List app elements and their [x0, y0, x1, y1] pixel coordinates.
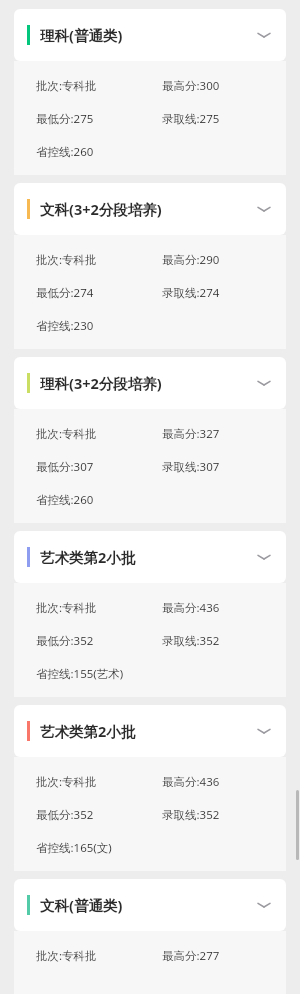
staticText: 最低分:352	[36, 807, 162, 823]
staticText: 省控线:165(文)	[36, 840, 162, 856]
staticText: 省控线:155(艺术)	[36, 666, 162, 682]
staticText: 理科(普通类)	[40, 25, 254, 45]
other: Collapse	[254, 199, 274, 219]
staticText: 批次:专科批	[36, 948, 162, 964]
staticText: 录取线:274	[162, 285, 220, 301]
other: Collapse	[254, 895, 274, 915]
staticText: 省控线:260	[36, 144, 162, 160]
staticText: 批次:专科批	[36, 774, 162, 790]
staticText: 最高分:327	[162, 426, 220, 442]
staticText: 最低分:274	[36, 285, 162, 301]
button[interactable]: 艺术类第2小批	[14, 531, 286, 583]
staticText: 最高分:300	[162, 78, 220, 94]
button[interactable]: 艺术类第2小批	[14, 705, 286, 757]
staticText: 省控线:230	[36, 318, 162, 334]
other: Collapse	[254, 25, 274, 45]
other: Collapse	[254, 547, 274, 567]
staticText: 最低分:352	[36, 633, 162, 649]
staticText: 录取线:352	[162, 633, 220, 649]
staticText: 最低分:275	[36, 111, 162, 127]
staticText: 最高分:290	[162, 252, 220, 268]
other: Collapse	[254, 373, 274, 393]
button[interactable]: 理科(普通类)	[14, 9, 286, 61]
staticText: 录取线:307	[162, 459, 220, 475]
staticText: 艺术类第2小批	[40, 547, 254, 567]
staticText: 理科(3+2分段培养)	[40, 373, 254, 393]
staticText: 录取线:352	[162, 807, 220, 823]
staticText: 省控线:260	[36, 492, 162, 508]
staticText: 文科(普通类)	[40, 895, 254, 915]
staticText: 批次:专科批	[36, 252, 162, 268]
staticText: 文科(3+2分段培养)	[40, 199, 254, 219]
staticText: 最高分:436	[162, 774, 220, 790]
staticText: 录取线:275	[162, 111, 220, 127]
button[interactable]: 文科(3+2分段培养)	[14, 183, 286, 235]
staticText: 批次:专科批	[36, 426, 162, 442]
button[interactable]: 理科(3+2分段培养)	[14, 357, 286, 409]
staticText: 批次:专科批	[36, 600, 162, 616]
other: Collapse	[254, 721, 274, 741]
staticText: 最高分:277	[162, 948, 220, 964]
staticText: 艺术类第2小批	[40, 721, 254, 741]
staticText: 最低分:307	[36, 459, 162, 475]
staticText: 批次:专科批	[36, 78, 162, 94]
button[interactable]: 文科(普通类)	[14, 879, 286, 931]
staticText: 最高分:436	[162, 600, 220, 616]
